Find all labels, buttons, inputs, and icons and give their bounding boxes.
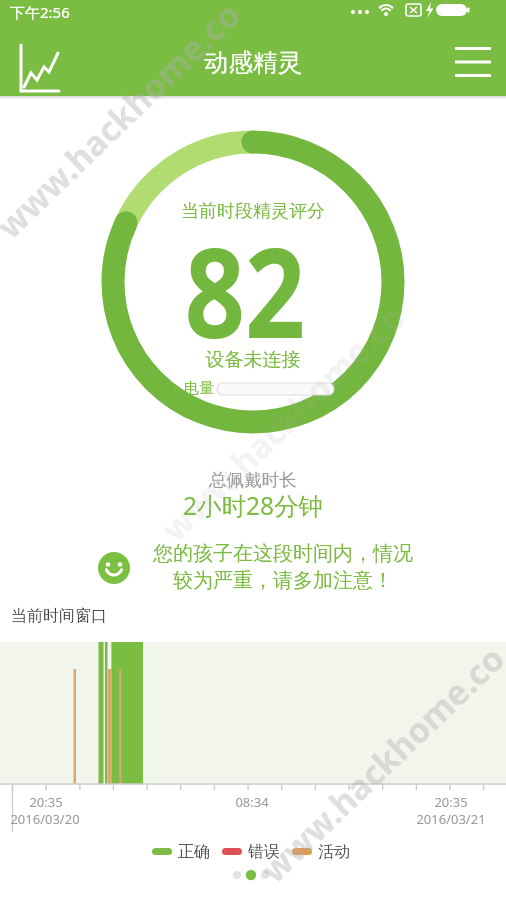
staticText: www.hackhome.com: [0, 0, 260, 259]
staticText: 2小时28分钟: [0, 489, 506, 522]
staticText: 较为严重，请多加注意！: [30, 568, 506, 593]
staticText: 您的孩子在这段时间内，情况: [30, 541, 506, 566]
staticText: 08:34: [152, 793, 352, 811]
staticText: 2016/03/21: [351, 810, 506, 828]
staticText: 下午2:56: [10, 2, 70, 22]
staticText: www.hackhome.com: [244, 629, 506, 900]
staticText: 总佩戴时长: [0, 469, 506, 491]
staticText: 动感精灵: [0, 47, 506, 78]
staticText: 当前时间窗口: [11, 606, 107, 626]
staticText: 电量: [184, 379, 214, 398]
staticText: 2016/03/20: [0, 810, 145, 828]
staticText: www.hackhome.com: [145, 288, 425, 562]
staticText: 当前时段精灵评分: [0, 200, 506, 223]
staticText: 20:35: [351, 793, 506, 811]
staticText: 82: [30, 205, 460, 374]
staticText: 错误: [248, 842, 280, 862]
staticText: 活动: [318, 842, 350, 862]
staticText: 20:35: [0, 793, 146, 811]
staticText: 正确: [178, 842, 210, 862]
staticText: 设备未连接: [0, 348, 506, 372]
